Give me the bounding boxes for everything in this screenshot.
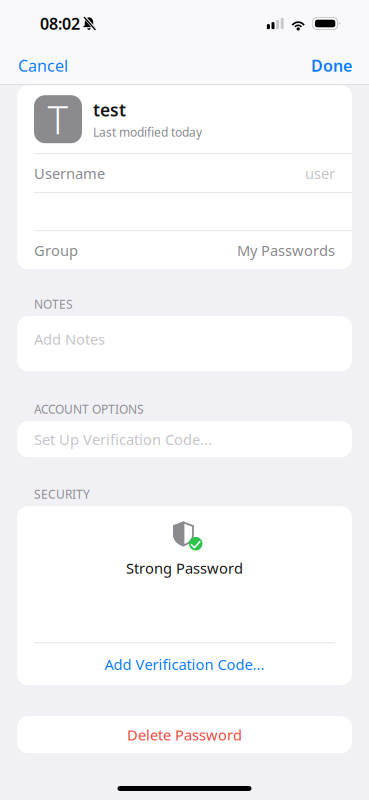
staticText: user: [305, 163, 335, 183]
staticText: Last modified today: [93, 124, 202, 140]
staticText: NOTES: [34, 296, 73, 312]
staticText: Done: [311, 55, 352, 76]
staticText: ACCOUNT OPTIONS: [34, 401, 144, 417]
staticText: T: [47, 93, 68, 145]
staticText: 08:02: [40, 13, 80, 34]
button[interactable]: Set Up Verification Code...: [0, 421, 369, 457]
staticText: SECURITY: [34, 486, 90, 502]
button[interactable]: Cancel: [18, 49, 68, 82]
button[interactable]: Group: [17, 231, 352, 269]
button[interactable]: Done: [311, 49, 352, 82]
staticText: Group: [34, 240, 78, 260]
staticText: Delete Password: [127, 725, 242, 744]
staticText: Set Up Verification Code...: [34, 429, 212, 449]
staticText: Add Verification Code...: [104, 654, 264, 674]
staticText: Add Notes: [34, 329, 105, 349]
staticText: Cancel: [18, 55, 68, 76]
button[interactable]: Username: [17, 154, 352, 192]
staticText: My Passwords: [237, 240, 335, 260]
button[interactable]: Add Verification Code...: [17, 643, 352, 685]
staticText: Strong Password: [126, 558, 243, 578]
button[interactable]: Add Notes: [0, 316, 369, 371]
staticText: test: [93, 98, 126, 121]
button[interactable]: Delete Password: [0, 716, 369, 753]
staticText: Username: [34, 163, 105, 183]
